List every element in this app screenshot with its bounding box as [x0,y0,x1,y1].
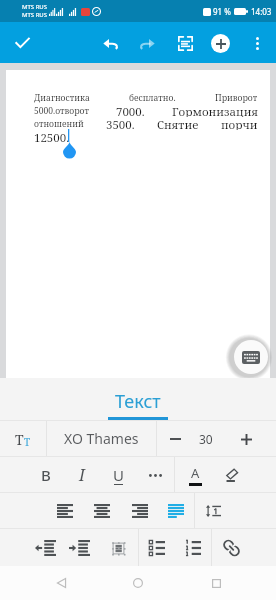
staticText: A [191,464,200,482]
button[interactable]: Bold [29,458,63,492]
button[interactable]: Add [203,26,237,60]
staticText: T [24,435,31,449]
staticText: U [113,465,124,485]
button[interactable]: Line spacing [196,494,230,528]
staticText: XO Thames [64,429,139,448]
button[interactable]: Highlight [214,458,248,492]
button[interactable]: Underline [101,458,135,492]
staticText: бесплатно. [129,92,176,104]
button[interactable]: Increase indent [62,531,96,565]
staticText: 3500. [106,117,135,130]
staticText: T [15,430,24,449]
button[interactable]: Show keyboard [234,340,268,374]
button[interactable]: Align left [48,494,82,528]
staticText: Приворот [215,92,258,104]
button[interactable]: Bullet list [140,531,174,565]
button[interactable]: Decrease font size [158,422,192,456]
button[interactable]: Decrease indent [28,531,62,565]
staticText: 12500. [34,130,70,143]
button[interactable]: Justify [159,494,193,528]
staticText: MTS RUS [22,11,48,19]
button[interactable]: Recents [199,566,233,600]
staticText: Диагностика [34,92,90,104]
button[interactable]: Done [6,26,39,59]
button[interactable]: Increase font size [229,422,263,456]
staticText: B [41,465,51,485]
staticText: 14:03 [251,6,272,17]
button[interactable]: Italic [65,458,99,492]
button[interactable]: Home [121,566,155,600]
button[interactable]: Redo [130,26,164,60]
staticText: MTS RUS [22,3,48,11]
button[interactable]: More options [240,26,274,60]
button[interactable]: Text colour [178,458,212,492]
button[interactable]: Font size [189,422,223,456]
button[interactable]: Undo [93,26,127,60]
staticText: Гормонизация [172,104,258,117]
staticText: Текст [115,389,161,414]
button[interactable]: XO Thames [47,421,156,456]
button[interactable]: Align center [85,494,119,528]
staticText: порчи [221,117,258,130]
button[interactable]: Back [44,566,78,600]
staticText: Снятие [157,117,199,130]
button[interactable]: More text options [138,458,172,492]
staticText: I [79,464,85,486]
button[interactable]: Scan text [168,26,202,60]
button[interactable]: Insert link [214,531,248,565]
staticText: 5000.отворот [34,105,89,117]
button[interactable]: Numbered list [176,531,210,565]
button[interactable]: Text style [0,421,46,456]
staticText: отношений [34,118,84,130]
staticText: 30 [199,431,213,447]
button[interactable]: Paragraph settings [101,531,135,565]
staticText: 91 % [213,6,231,17]
staticText: 7000. [116,104,145,117]
button[interactable]: Align right [123,494,157,528]
button[interactable]: Текст [99,378,177,420]
